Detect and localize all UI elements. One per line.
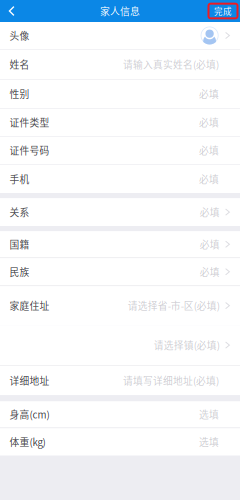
button[interactable]: 详细地址 <box>0 366 240 395</box>
button[interactable]: 完成 <box>210 6 235 16</box>
staticText: 证件类型 <box>9 115 49 129</box>
staticText: 体重(kg) <box>9 435 45 449</box>
staticText: 性别 <box>9 87 29 101</box>
staticText: 家庭住址 <box>9 299 49 313</box>
staticText: 家人信息 <box>100 4 140 18</box>
staticText: 请选择镇(必填) <box>154 338 220 352</box>
staticText: 必填 <box>200 205 220 219</box>
staticText: 头像 <box>9 28 29 43</box>
staticText: 选填 <box>199 407 219 421</box>
staticText: 请输入真实姓名(必填) <box>123 57 219 71</box>
staticText: 关系 <box>9 205 29 219</box>
button[interactable]: 关系 <box>0 198 240 226</box>
staticText: 国籍 <box>9 237 29 251</box>
button[interactable]: 体重(kg) <box>0 428 240 455</box>
staticText: 必填 <box>200 265 220 279</box>
button[interactable]: 姓名 <box>0 50 240 79</box>
button[interactable]: 性别 <box>0 80 240 108</box>
staticText: 必填 <box>199 87 219 101</box>
staticText: 完成 <box>214 5 232 17</box>
button[interactable]: 身高(cm) <box>0 401 240 427</box>
staticText: 必填 <box>200 237 220 251</box>
staticText: 详细地址 <box>9 373 49 388</box>
button[interactable]: 手机 <box>0 165 240 193</box>
staticText: 请填写详细地址(必填) <box>123 373 219 388</box>
staticText: 请选择省-市-区(必填) <box>128 299 220 313</box>
staticText: 选填 <box>199 435 219 449</box>
button[interactable]: 证件号码 <box>0 137 240 164</box>
staticText: 证件号码 <box>9 143 49 157</box>
button[interactable]: 国籍 <box>0 231 240 257</box>
button[interactable]: Back <box>1 0 23 22</box>
button[interactable]: 民族 <box>0 258 240 285</box>
staticText: 民族 <box>9 265 29 279</box>
staticText: 姓名 <box>9 57 29 71</box>
button[interactable]: 请选择镇(必填) <box>0 325 240 365</box>
staticText: 手机 <box>9 172 29 186</box>
button[interactable]: 头像 <box>0 22 240 49</box>
button[interactable]: 家庭住址 <box>0 286 240 325</box>
staticText: 必填 <box>199 115 219 129</box>
staticText: 必填 <box>199 143 219 157</box>
staticText: 身高(cm) <box>9 407 49 421</box>
button[interactable]: 证件类型 <box>0 109 240 136</box>
staticText: 必填 <box>199 172 219 186</box>
